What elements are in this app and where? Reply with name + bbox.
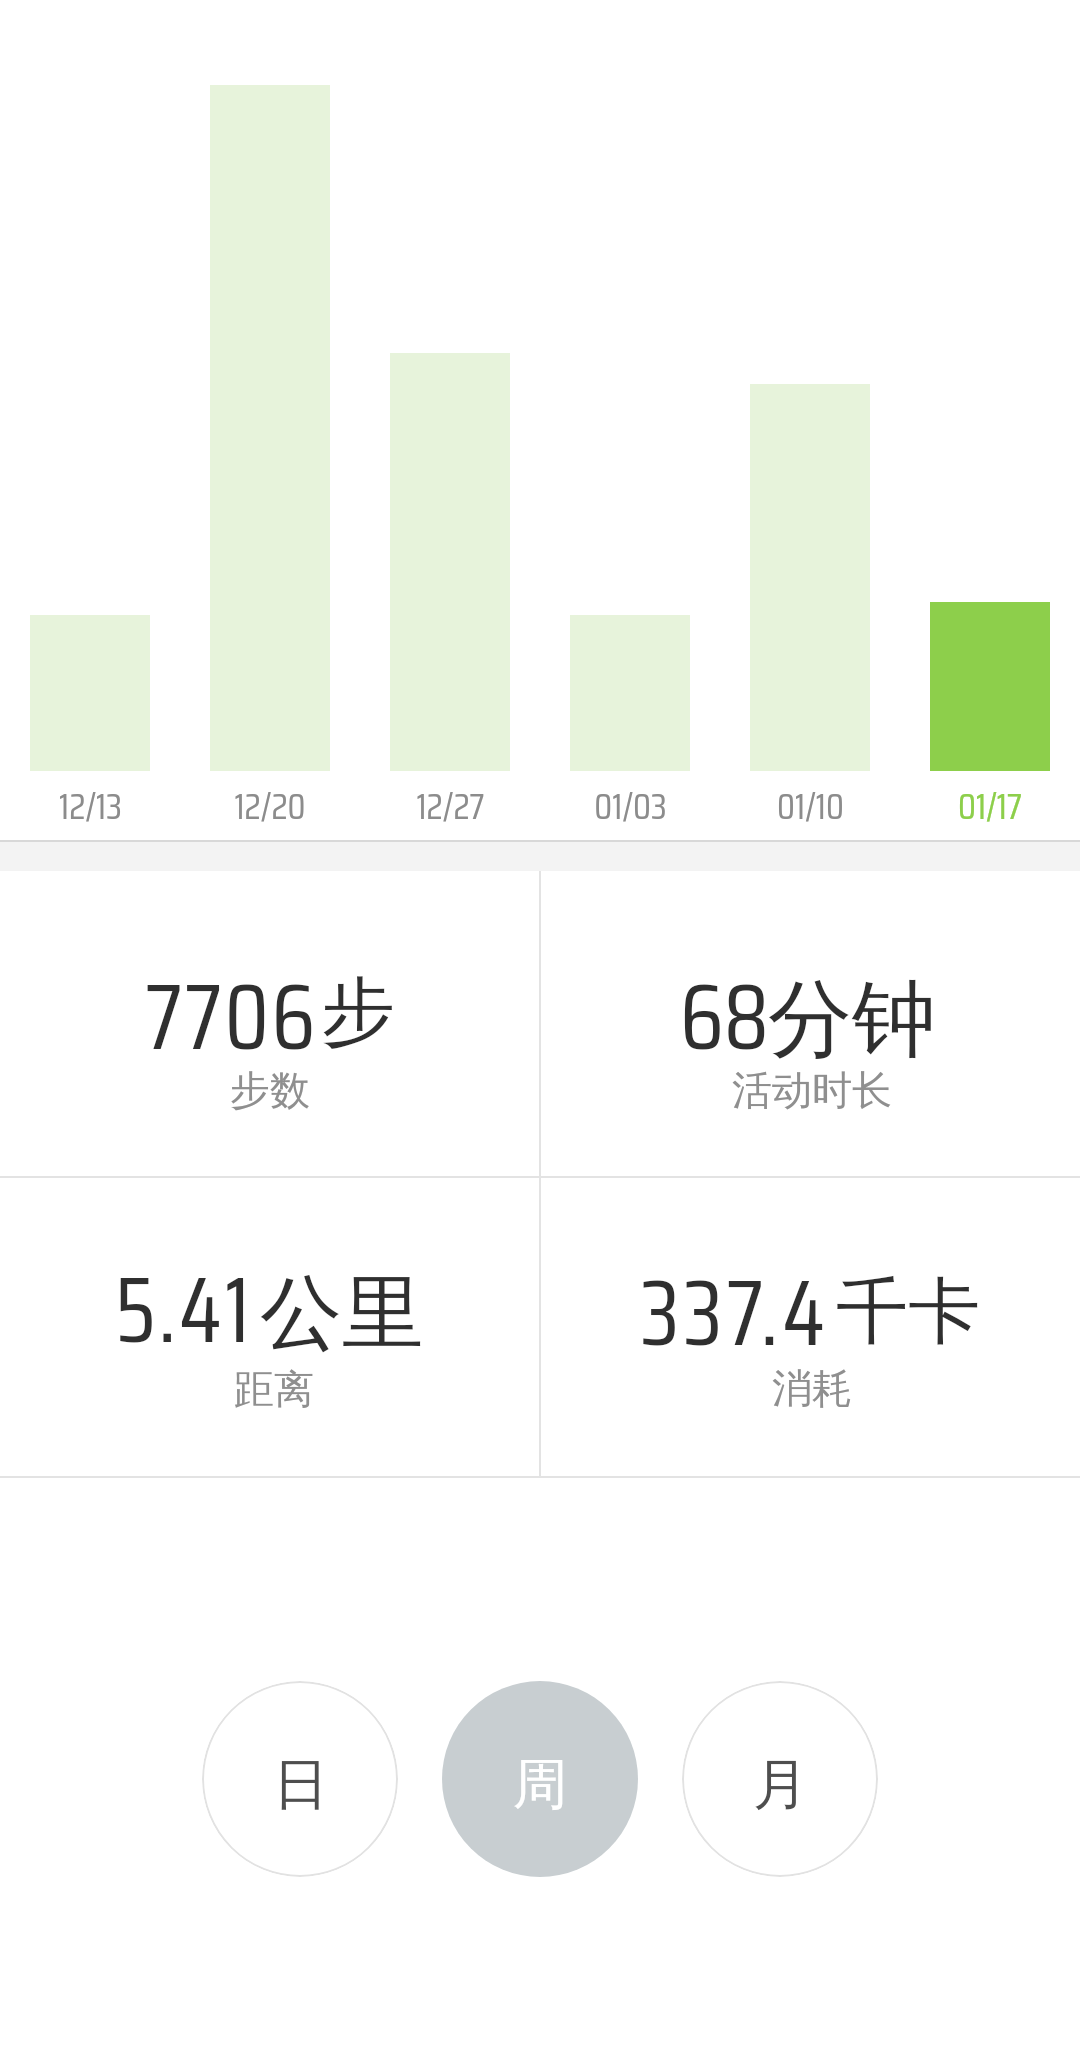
staticText: 7706	[145, 945, 318, 1085]
staticText: 337.4	[640, 1241, 830, 1381]
button[interactable]: 周	[442, 1681, 638, 1877]
staticText: 01/03	[594, 777, 667, 831]
staticText: 消耗	[772, 1363, 852, 1413]
staticText: 01/17	[958, 777, 1022, 831]
staticText: 12/27	[416, 777, 485, 831]
staticText: 5.41	[115, 1238, 253, 1378]
staticText: 步	[321, 966, 395, 1059]
button[interactable]: 月	[682, 1681, 878, 1877]
staticText: 公里	[260, 1262, 424, 1365]
staticText: 活动时长	[732, 1065, 892, 1115]
staticText: 步数	[230, 1065, 310, 1115]
staticText: 68	[680, 945, 769, 1085]
staticText: 周	[513, 1750, 568, 1819]
staticText: 12/13	[59, 777, 122, 831]
staticText: 月	[753, 1750, 808, 1819]
staticText: 分钟	[768, 967, 936, 1073]
staticText: 千卡	[836, 1267, 980, 1358]
staticText: 日	[273, 1750, 328, 1819]
staticText: 01/10	[777, 777, 844, 831]
staticText: 距离	[234, 1364, 314, 1414]
button[interactable]: 日	[202, 1681, 398, 1877]
staticText: 12/20	[234, 777, 306, 831]
